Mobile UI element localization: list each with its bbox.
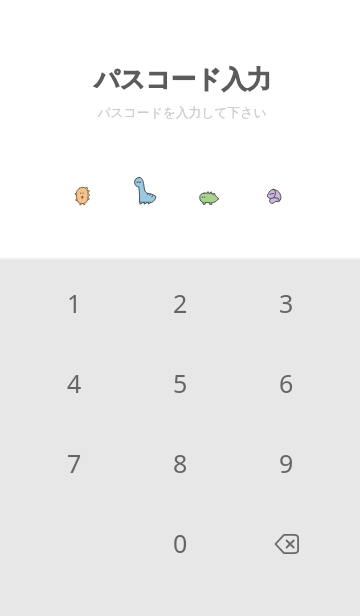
- button[interactable]: 3: [234, 264, 338, 342]
- button[interactable]: 5: [128, 344, 232, 422]
- button[interactable]: 8: [128, 424, 232, 502]
- button[interactable]: 6: [234, 344, 338, 422]
- staticText: 6: [279, 366, 294, 400]
- button[interactable]: 2: [128, 264, 232, 342]
- button[interactable]: 4: [22, 344, 126, 422]
- button[interactable]: 9: [234, 424, 338, 502]
- staticText: 0: [173, 526, 188, 560]
- button[interactable]: 1: [22, 264, 126, 342]
- button[interactable]: 7: [22, 424, 126, 502]
- staticText: 3: [279, 286, 294, 320]
- staticText: 9: [279, 446, 294, 480]
- button[interactable]: Delete: [234, 504, 338, 582]
- staticText: 8: [173, 446, 188, 480]
- staticText: 4: [67, 366, 82, 400]
- button[interactable]: 0: [128, 504, 232, 582]
- staticText: パスコード入力: [94, 64, 272, 95]
- staticText: パスコードを入力して下さい: [97, 105, 267, 121]
- staticText: 7: [67, 446, 82, 480]
- staticText: 5: [173, 366, 188, 400]
- staticText: 1: [67, 286, 82, 320]
- staticText: 2: [173, 286, 188, 320]
